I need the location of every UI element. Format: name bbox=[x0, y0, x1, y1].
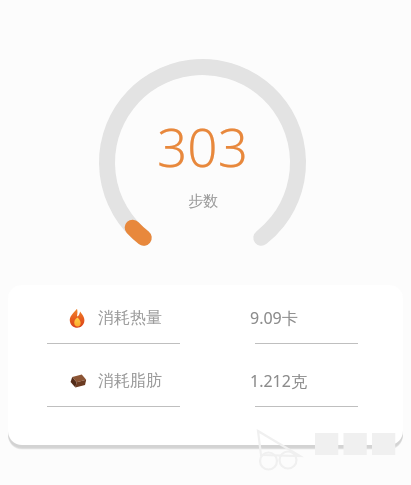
button[interactable]: Calories burned bbox=[8, 307, 403, 344]
other: Calories burned bbox=[66, 307, 88, 329]
other: Fat burned bbox=[66, 370, 88, 392]
staticText: 消耗脂肪 bbox=[98, 371, 162, 391]
staticText: 303 bbox=[157, 110, 248, 182]
staticText: 步数 bbox=[188, 192, 218, 211]
button[interactable]: 303 bbox=[99, 59, 306, 266]
button[interactable]: Fat burned bbox=[8, 370, 403, 407]
staticText: 消耗热量 bbox=[98, 308, 162, 328]
staticText: 9.09卡 bbox=[250, 307, 298, 329]
staticText: 1.212克 bbox=[250, 370, 307, 392]
